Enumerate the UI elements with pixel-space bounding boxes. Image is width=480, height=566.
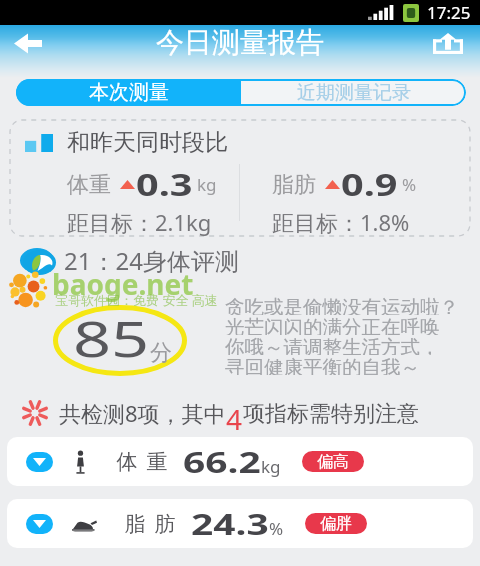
- staticText: 偏胖: [320, 514, 352, 534]
- staticText: 21：24身体评测: [64, 244, 239, 277]
- button[interactable]: 脂肪: [7, 499, 473, 548]
- staticText: 寻回健康平衡的自我～: [225, 355, 420, 375]
- button[interactable]: 体重: [7, 437, 473, 486]
- staticText: 4: [226, 400, 243, 430]
- button[interactable]: 近期测量记录: [241, 79, 466, 106]
- staticText: 距目标：1.8%: [272, 207, 410, 236]
- staticText: baoge.net: [52, 265, 194, 303]
- staticText: 体重: [67, 171, 111, 199]
- staticText: 偏高: [317, 452, 349, 472]
- staticText: 本次测量: [89, 80, 169, 105]
- staticText: 脂肪: [120, 511, 180, 537]
- staticText: 体重: [112, 449, 172, 475]
- staticText: 分: [150, 339, 172, 367]
- staticText: 0.9: [341, 164, 398, 205]
- staticText: 你哦～请调整生活方式，: [225, 335, 440, 355]
- staticText: 66.2: [183, 442, 261, 481]
- button[interactable]: Share: [429, 27, 467, 59]
- staticText: 和昨天同时段比: [67, 128, 228, 157]
- staticText: 85: [73, 305, 150, 372]
- staticText: %: [269, 517, 284, 540]
- staticText: 0.3: [136, 164, 193, 205]
- staticText: 今日测量报告: [156, 25, 324, 60]
- staticText: kg: [197, 173, 217, 196]
- staticText: %: [402, 173, 417, 196]
- staticText: 项指标需特别注意: [243, 400, 419, 428]
- staticText: 脂肪: [272, 171, 316, 199]
- staticText: 共检测8项，其中: [59, 398, 226, 428]
- staticText: 宝哥软件园：免费 安全 高速: [55, 291, 218, 309]
- staticText: 24.3: [191, 504, 269, 543]
- staticText: kg: [261, 455, 281, 478]
- staticText: 近期测量记录: [297, 81, 411, 105]
- button[interactable]: 本次测量: [16, 79, 241, 106]
- button[interactable]: Back: [7, 26, 49, 60]
- staticText: 贪吃或是偷懒没有运动啦？: [225, 295, 459, 315]
- staticText: 距目标：2.1kg: [67, 207, 212, 236]
- staticText: 光芒闪闪的满分正在呼唤: [225, 315, 440, 335]
- staticText: 17:25: [427, 1, 471, 24]
